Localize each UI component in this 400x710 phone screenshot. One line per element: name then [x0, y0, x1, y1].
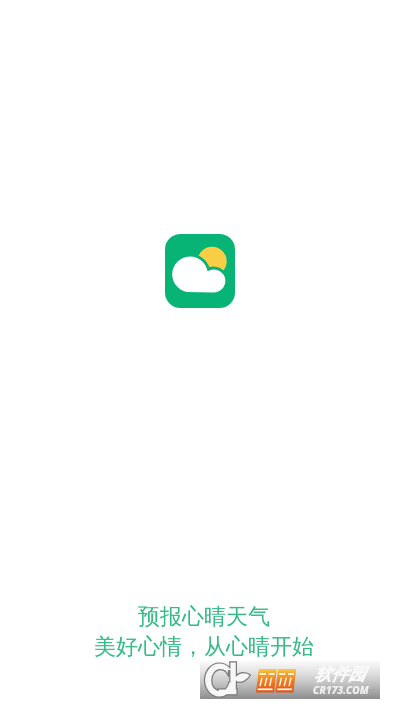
staticText: 软件园 [314, 664, 365, 685]
staticText: 预报心晴天气 [138, 603, 270, 631]
staticText: CR173.COM [313, 683, 369, 697]
button[interactable]: cr173.com 西西软件园 [200, 661, 380, 699]
staticText: 美好心情，从心晴开始 [94, 633, 314, 661]
button[interactable]: 心晴天气 app icon [165, 234, 235, 308]
